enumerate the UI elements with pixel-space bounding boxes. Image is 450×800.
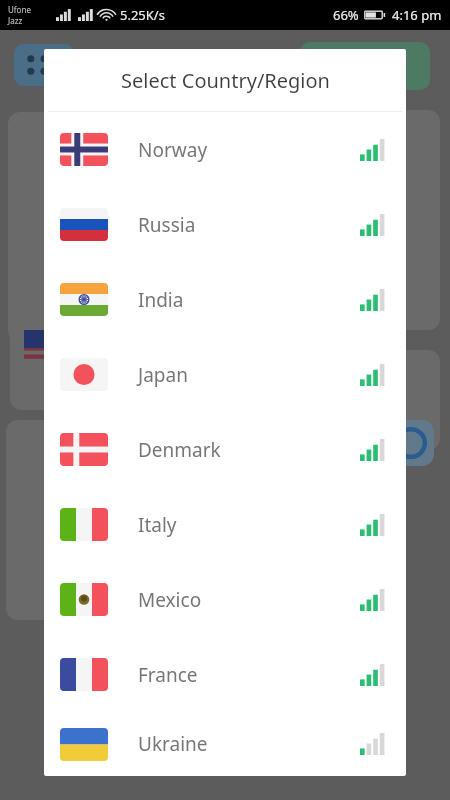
staticText: Select Country/Region bbox=[121, 67, 330, 94]
button[interactable]: Russia bbox=[44, 187, 406, 262]
button[interactable]: France bbox=[44, 637, 406, 712]
staticText: Russia bbox=[138, 212, 196, 238]
staticText: Jazz bbox=[8, 15, 23, 26]
button[interactable]: Denmark bbox=[44, 412, 406, 487]
staticText: Denmark bbox=[138, 437, 221, 463]
button[interactable]: Ukraine bbox=[44, 712, 406, 776]
staticText: Japan bbox=[138, 362, 188, 388]
button[interactable]: Norway bbox=[44, 112, 406, 187]
staticText: Norway bbox=[138, 137, 208, 163]
staticText: 5.25K/s bbox=[120, 6, 165, 24]
staticText: France bbox=[138, 662, 198, 688]
staticText: 4:16 pm bbox=[392, 6, 442, 24]
staticText: Italy bbox=[138, 512, 177, 538]
staticText: Ukraine bbox=[138, 731, 208, 757]
button[interactable]: Italy bbox=[44, 487, 406, 562]
staticText: Ufone bbox=[8, 4, 31, 15]
staticText: 66% bbox=[333, 6, 359, 24]
button[interactable]: Mexico bbox=[44, 562, 406, 637]
staticText: India bbox=[138, 287, 184, 313]
button[interactable]: Japan bbox=[44, 337, 406, 412]
button[interactable]: India bbox=[44, 262, 406, 337]
staticText: Mexico bbox=[138, 587, 202, 613]
